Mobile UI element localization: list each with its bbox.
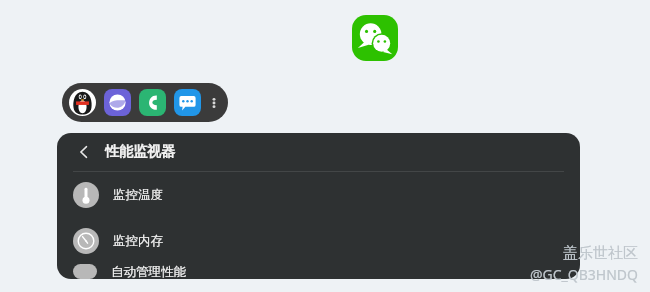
staticText: 自动管理性能 xyxy=(111,264,186,279)
staticText: 监控内存 xyxy=(113,233,163,249)
staticText: 监控温度 xyxy=(113,187,163,203)
button[interactable]: 监控内存 xyxy=(57,218,580,264)
staticText: 盖乐世社区 xyxy=(563,244,638,263)
button[interactable]: Back xyxy=(73,141,95,163)
button[interactable]: Phone xyxy=(139,89,166,116)
button[interactable]: QQ xyxy=(69,89,96,116)
button[interactable]: 自动管理性能 xyxy=(57,264,580,279)
staticText: @GC_QB3HNDQ xyxy=(529,265,638,284)
button[interactable]: Messages xyxy=(174,89,201,116)
button[interactable]: More options xyxy=(206,89,222,116)
button[interactable]: Internet browser xyxy=(104,89,131,116)
button[interactable]: 监控温度 xyxy=(57,172,580,218)
staticText: 性能监视器 xyxy=(105,143,175,161)
button[interactable]: WeChat xyxy=(352,15,398,61)
